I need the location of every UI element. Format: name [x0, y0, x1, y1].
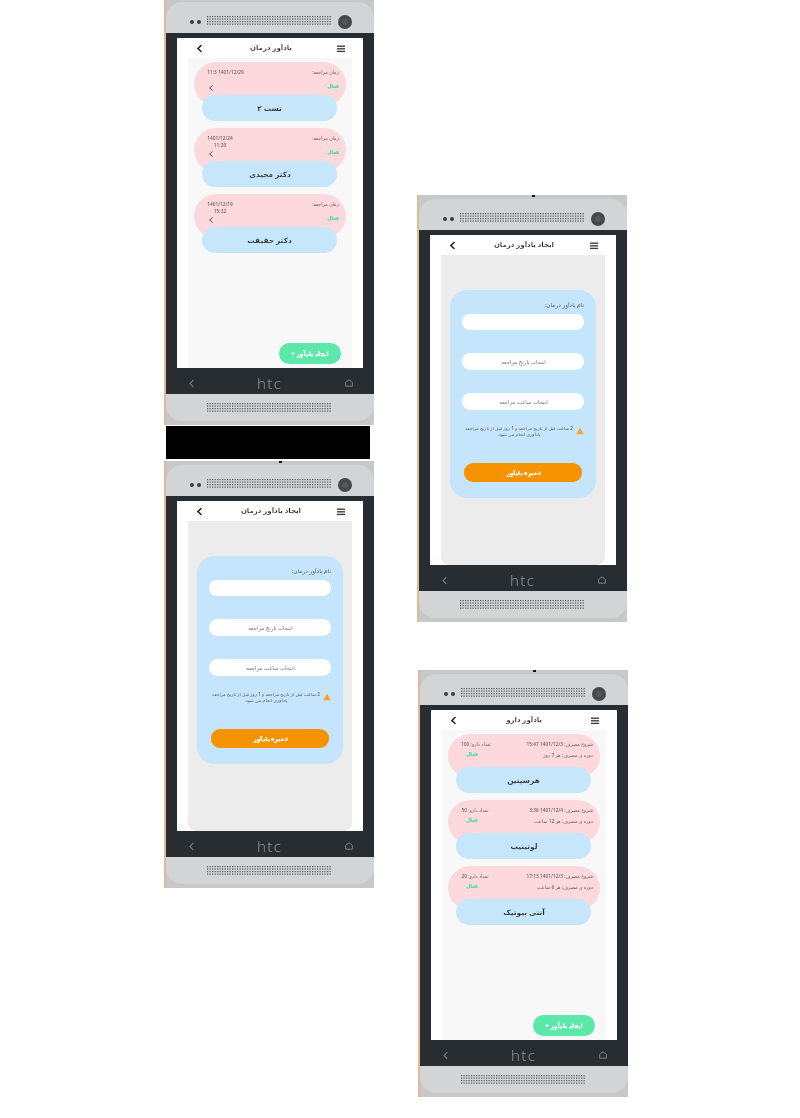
- button[interactable]: [462, 314, 584, 330]
- button[interactable]: Menu: [588, 714, 601, 727]
- staticText: نام یادآور درمان:: [209, 567, 331, 575]
- button[interactable]: ایجاد یادآور +: [279, 343, 341, 364]
- button[interactable]: زمان مراجعه:: [194, 194, 346, 238]
- button[interactable]: Back: [447, 714, 460, 727]
- staticText: 2 ساعت قبل از تاریخ مراجعه و 1 روز قبل ا…: [464, 425, 574, 437]
- staticText: فعال: [466, 752, 478, 758]
- staticText: یادآور دارو: [506, 715, 542, 725]
- staticText: ایجاد یادآور +: [291, 350, 329, 358]
- button[interactable]: شروع مصرف: 1401/12/3 17:13: [448, 866, 600, 910]
- staticText: دوره ی مصرف: هر 7 روز: [543, 752, 593, 759]
- staticText: دکتر حقیقت: [247, 235, 292, 245]
- staticText: زمان مراجعه:: [312, 135, 339, 142]
- staticText: انتخاب تاریخ مراجعه: [501, 358, 546, 365]
- button[interactable]: Menu: [587, 239, 600, 252]
- staticText: لوتینیب: [510, 842, 538, 851]
- button[interactable]: Menu: [334, 42, 347, 55]
- staticText: هرسپتین: [507, 776, 540, 785]
- staticText: فعال: [466, 818, 478, 824]
- staticText: شروع مصرف: 1401/12/3 17:13: [526, 873, 593, 880]
- staticText: ذخیره یادآور: [506, 469, 541, 477]
- staticText: زمان مراجعه:: [312, 201, 339, 208]
- staticText: شروع مصرف: 1401/12/3 15:47: [526, 741, 593, 748]
- button[interactable]: Home: [342, 376, 356, 390]
- button[interactable]: Back: [193, 42, 206, 55]
- button[interactable]: Home: [342, 839, 356, 853]
- staticText: ایجاد یادآور درمان: [240, 506, 301, 516]
- button[interactable]: هرسپتین: [456, 767, 591, 793]
- staticText: زمان مراجعه:: [312, 69, 339, 76]
- staticText: انتخاب ساعت مراجعه: [246, 664, 295, 671]
- staticText: فعال: [327, 150, 339, 156]
- staticText: فعال: [466, 884, 478, 890]
- button[interactable]: انتخاب تاریخ مراجعه: [462, 353, 584, 370]
- button[interactable]: Back: [446, 239, 459, 252]
- button[interactable]: Back: [438, 1048, 452, 1062]
- button[interactable]: زمان مراجعه:: [194, 128, 346, 172]
- button[interactable]: شروع مصرف: 1401/12/4 3:36: [448, 800, 600, 844]
- button[interactable]: Back: [193, 505, 206, 518]
- button[interactable]: زمان مراجعه:: [194, 62, 346, 106]
- staticText: htc: [257, 373, 283, 393]
- staticText: htc: [257, 836, 283, 856]
- button[interactable]: Home: [595, 573, 609, 587]
- staticText: شروع مصرف: 1401/12/4 3:36: [529, 807, 593, 814]
- staticText: فعال: [327, 84, 339, 90]
- button[interactable]: [209, 580, 331, 596]
- button[interactable]: Back: [184, 376, 198, 390]
- staticText: 1401/12/19 15:32: [207, 201, 233, 214]
- button[interactable]: Menu: [334, 505, 347, 518]
- staticText: دوره ی مصرف: هر 12 ساعت: [534, 818, 593, 825]
- button[interactable]: انتخاب ساعت مراجعه: [209, 659, 331, 676]
- staticText: فعال: [327, 216, 339, 222]
- button[interactable]: انتخاب ساعت مراجعه: [462, 393, 584, 410]
- staticText: انتخاب تاریخ مراجعه: [248, 624, 293, 631]
- staticText: 2 ساعت قبل از تاریخ مراجعه و 1 روز قبل ا…: [211, 691, 321, 703]
- staticText: 1401/12/29 11:3: [207, 69, 244, 76]
- staticText: ایجاد یادآور +: [545, 1022, 583, 1030]
- staticText: انتخاب ساعت مراجعه: [499, 398, 548, 405]
- staticText: یادآور درمان: [249, 43, 292, 53]
- button[interactable]: Back: [437, 573, 451, 587]
- staticText: دوره ی مصرف: هر 6 ساعت: [537, 884, 593, 891]
- staticText: تعداد دارو: 50: [461, 807, 489, 814]
- button[interactable]: ذخیره یادآور: [211, 729, 329, 748]
- button[interactable]: دکتر حقیقت: [202, 227, 337, 253]
- button[interactable]: شروع مصرف: 1401/12/3 15:47: [448, 734, 600, 778]
- staticText: ایجاد یادآور درمان: [493, 240, 554, 250]
- staticText: 1401/12/24 11:20: [207, 135, 233, 148]
- button[interactable]: آنتی بیوتیک: [456, 899, 591, 925]
- button[interactable]: Home: [596, 1048, 610, 1062]
- button[interactable]: لوتینیب: [456, 833, 591, 859]
- staticText: آنتی بیوتیک: [503, 907, 545, 917]
- button[interactable]: Back: [184, 839, 198, 853]
- staticText: تعداد دارو: 20: [461, 873, 489, 880]
- staticText: تعداد دارو: 100: [461, 741, 491, 748]
- staticText: دکتر مجیدی: [249, 169, 291, 179]
- staticText: نام یادآور درمان:: [462, 301, 584, 309]
- button[interactable]: ذخیره یادآور: [464, 463, 582, 482]
- button[interactable]: انتخاب تاریخ مراجعه: [209, 619, 331, 636]
- staticText: تست ۲: [257, 103, 282, 113]
- staticText: htc: [510, 570, 536, 590]
- button[interactable]: ایجاد یادآور +: [533, 1015, 595, 1036]
- button[interactable]: دکتر مجیدی: [202, 161, 337, 187]
- staticText: ذخیره یادآور: [253, 735, 288, 743]
- staticText: htc: [511, 1045, 537, 1065]
- button[interactable]: تست ۲: [202, 95, 337, 121]
